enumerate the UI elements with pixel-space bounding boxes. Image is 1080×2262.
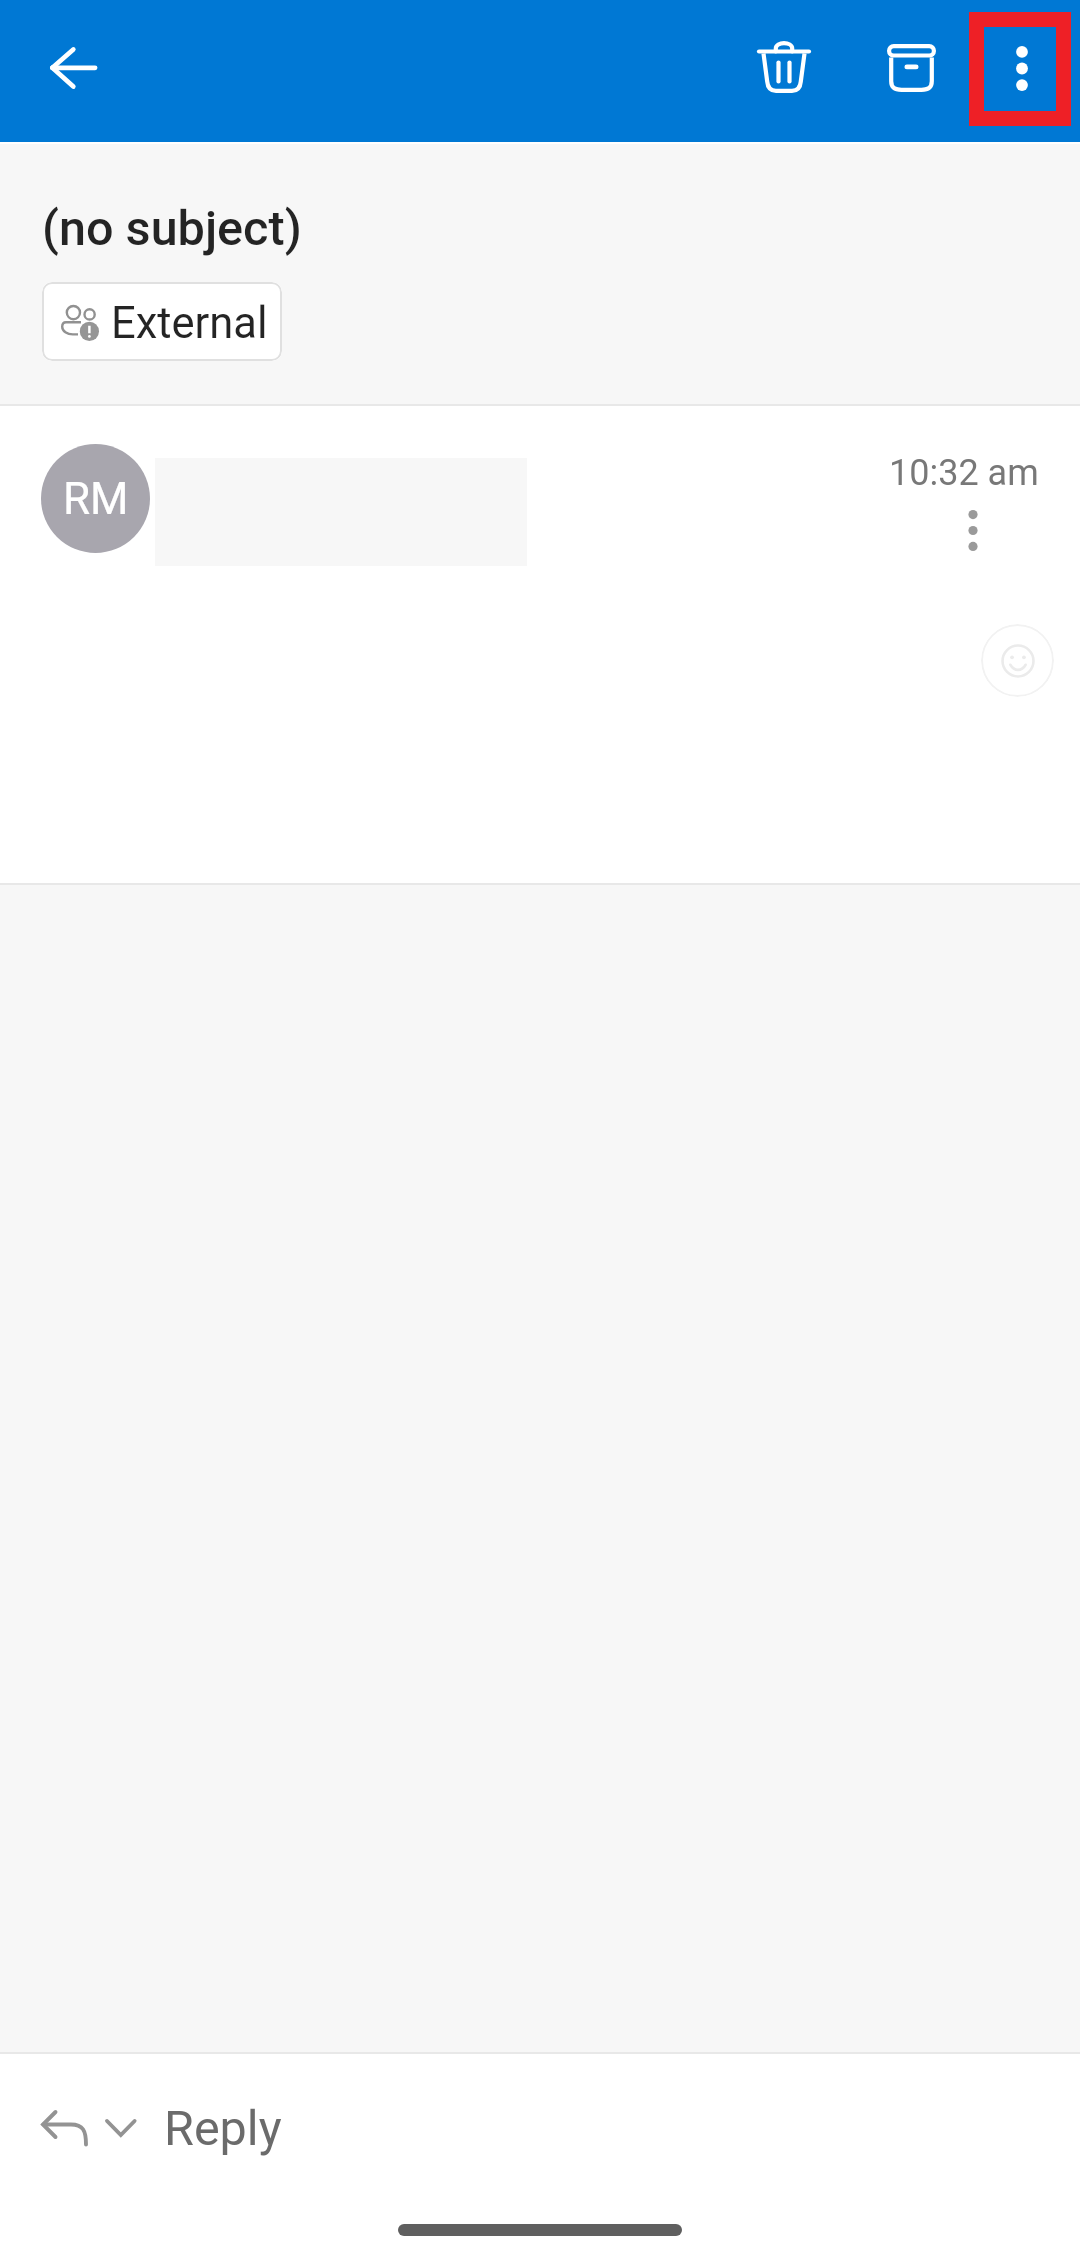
staticText: (no subject): [42, 200, 302, 257]
staticText: RM: [63, 473, 129, 525]
button[interactable]: Reply: [20, 2083, 310, 2179]
staticText: External: [111, 298, 268, 349]
button[interactable]: Message actions: [933, 490, 1013, 570]
button[interactable]: External: [42, 282, 282, 361]
staticText: 10:32 am: [889, 452, 1039, 494]
button[interactable]: More options: [969, 12, 1071, 126]
button[interactable]: Archive: [863, 20, 959, 116]
button[interactable]: Add reaction: [981, 624, 1054, 697]
staticText: Reply: [164, 2100, 282, 2157]
button[interactable]: Delete: [736, 20, 832, 116]
button[interactable]: RM: [41, 444, 150, 553]
button[interactable]: Back: [25, 20, 121, 116]
